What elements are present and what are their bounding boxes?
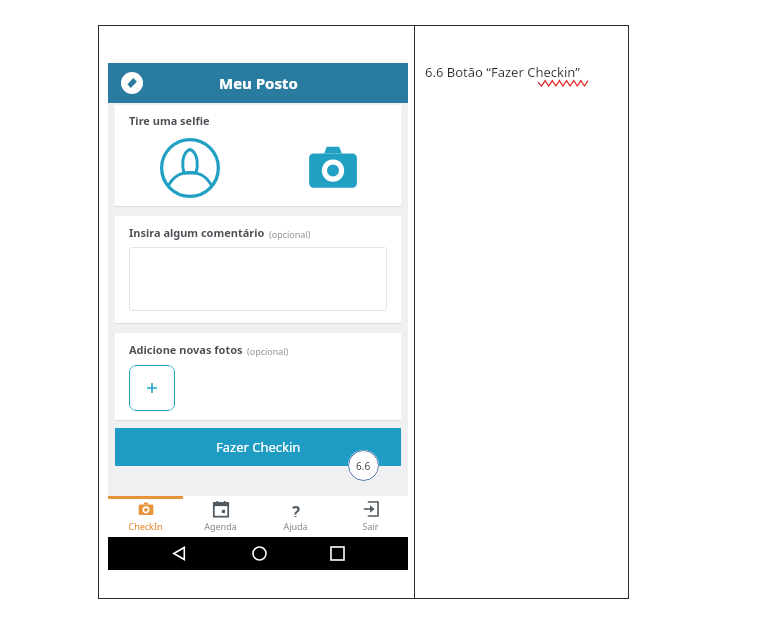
button[interactable]: Agenda	[183, 496, 258, 537]
button[interactable]: Menu	[118, 69, 146, 97]
staticText: Tire uma selfie	[129, 113, 210, 128]
staticText: 6.6	[356, 459, 371, 473]
staticText: 6.6 Botão “Fazer Checkin”	[425, 63, 580, 81]
staticText: Meu Posto	[219, 73, 298, 93]
staticText: Sair	[362, 520, 379, 532]
staticText: Ajuda	[283, 520, 308, 532]
button[interactable]: Sair	[333, 496, 408, 537]
staticText: CheckIn	[128, 520, 163, 532]
staticText: Adicione novas fotos	[129, 342, 243, 357]
button[interactable]: CheckIn	[108, 496, 183, 537]
staticText: Insira algum comentário	[129, 225, 265, 240]
button[interactable]: Selfie	[115, 128, 265, 207]
button[interactable]: Fazer Checkin	[115, 428, 401, 466]
staticText: ?	[292, 501, 301, 517]
staticText: Agenda	[204, 520, 237, 532]
button[interactable]: ?	[258, 496, 333, 537]
staticText: (opcional)	[269, 228, 311, 240]
button[interactable]: Tirar foto	[265, 128, 401, 207]
staticText: Fazer Checkin	[216, 438, 301, 456]
button[interactable]	[129, 247, 387, 311]
button[interactable]: Adicionar foto	[129, 365, 175, 411]
staticText: (opcional)	[247, 345, 289, 357]
